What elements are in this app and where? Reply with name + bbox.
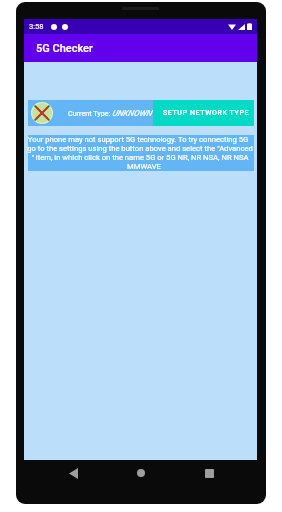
- staticText: 3:58: [29, 22, 44, 31]
- button[interactable]: Home: [117, 458, 165, 488]
- button[interactable]: Back: [49, 458, 97, 488]
- button[interactable]: SETUP NETWORK TYPE: [153, 100, 254, 126]
- staticText: 5G Checker: [36, 42, 93, 55]
- button[interactable]: Current Type: UNKNOWN: [28, 100, 153, 126]
- button[interactable]: Recent apps: [185, 458, 233, 488]
- staticText: MMWAVE: [31, 162, 257, 171]
- staticText: Current Type: UNKNOWN: [68, 108, 152, 118]
- staticText: go to the settings using the button abov…: [27, 144, 253, 153]
- staticText: Your phone may not support 5G technology…: [25, 135, 251, 144]
- staticText: SETUP NETWORK TYPE: [163, 109, 250, 117]
- staticText: " item, in which click on the name 5G or…: [27, 153, 253, 162]
